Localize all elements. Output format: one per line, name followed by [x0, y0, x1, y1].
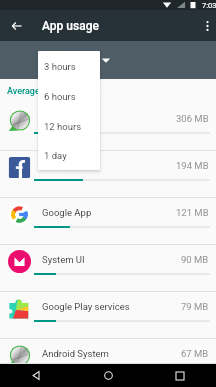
button[interactable]: 1 day [38, 141, 100, 170]
button[interactable]: Back [0, 364, 72, 387]
button[interactable]: Google Play services [0, 292, 216, 339]
button[interactable]: Facebook [0, 151, 216, 198]
button[interactable]: 6 hours [38, 81, 100, 111]
staticText: 306 MB [176, 113, 209, 124]
button[interactable]: Home [72, 364, 144, 387]
staticText: Google Play services [42, 301, 177, 312]
staticText: 79 MB [181, 301, 209, 312]
staticText: Chrome [42, 113, 172, 124]
staticText: 6 hours [44, 91, 76, 102]
button[interactable]: Google App [0, 198, 216, 245]
staticText: Android System [42, 348, 177, 359]
button[interactable]: More options [196, 16, 216, 36]
staticText: 194 MB [176, 160, 209, 171]
button[interactable]: Navigate up [5, 14, 29, 38]
staticText: App usage [42, 19, 99, 33]
staticText: 7:03 [202, 1, 216, 10]
staticText: Google App [42, 207, 172, 218]
button[interactable]: Recent apps [144, 364, 216, 387]
button[interactable]: 12 hours [38, 111, 100, 141]
staticText: Facebook [42, 160, 172, 171]
button[interactable]: System UI [0, 245, 216, 292]
staticText: 1 day [44, 150, 67, 161]
staticText: 121 MB [176, 207, 209, 218]
button[interactable]: Chrome [0, 104, 216, 151]
button[interactable]: Android System [0, 339, 216, 364]
staticText: 12 hours [44, 121, 82, 132]
staticText: System UI [42, 254, 177, 265]
staticText: 67 MB [181, 348, 209, 359]
staticText: Average [7, 86, 40, 97]
staticText: 3 hours [44, 61, 76, 72]
button[interactable]: Select time range [99, 53, 113, 67]
button[interactable]: 3 hours [38, 51, 100, 81]
staticText: 90 MB [181, 254, 209, 265]
